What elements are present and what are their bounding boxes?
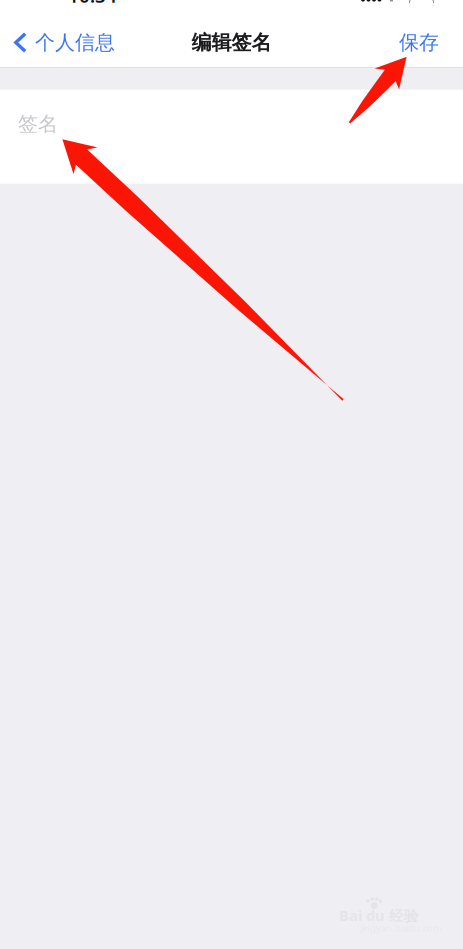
- staticText: 10:34: [68, 0, 117, 8]
- staticText: Bai du 经验: [339, 906, 419, 925]
- button[interactable]: 保存: [385, 17, 463, 59]
- staticText: 保存: [399, 30, 439, 55]
- button[interactable]: 个人信息: [0, 17, 125, 59]
- staticText: 签名: [18, 112, 58, 136]
- staticText: 编辑签名: [191, 30, 271, 55]
- staticText: 个人信息: [35, 30, 115, 55]
